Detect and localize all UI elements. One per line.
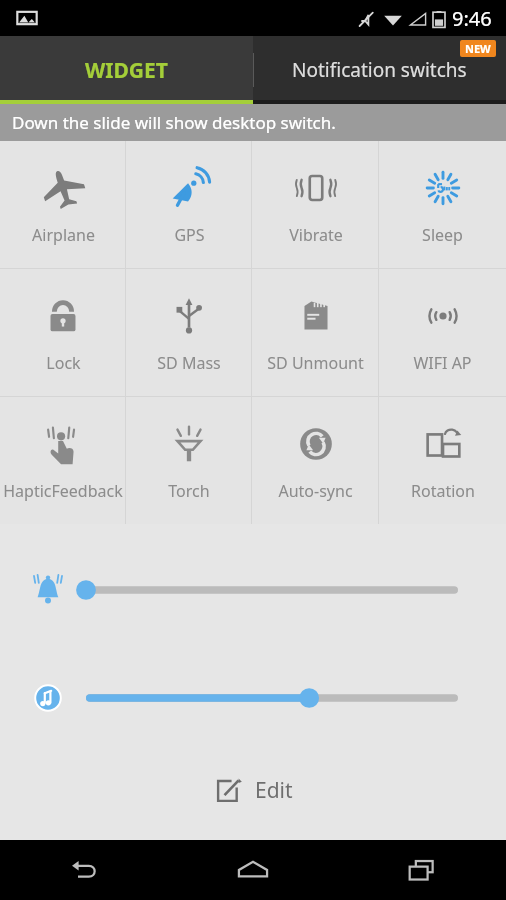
staticText: Edit [255, 776, 293, 805]
staticText: Torch [168, 480, 210, 502]
button[interactable]: Recent apps [337, 840, 506, 900]
button[interactable]: Airplane [0, 141, 126, 268]
button[interactable]: Torch [126, 397, 252, 524]
staticText: Auto-sync [278, 480, 353, 502]
staticText: SD Mass [157, 352, 221, 374]
button[interactable]: Auto-sync [252, 397, 379, 524]
button[interactable]: HapticFeedback [0, 397, 126, 524]
staticText: Sleep [422, 224, 463, 246]
button[interactable]: Notification switchs [253, 36, 506, 104]
button[interactable]: SD Unmount [252, 269, 379, 396]
staticText: Lock [46, 352, 81, 374]
other: Ringer volume [28, 570, 68, 610]
staticText: WIFI AP [413, 352, 472, 374]
button[interactable]: WIDGET [0, 36, 253, 104]
staticText: Rotation [411, 480, 475, 502]
button[interactable]: Back [0, 840, 168, 900]
button[interactable]: SD Mass [126, 269, 252, 396]
staticText: 9:46 [452, 5, 492, 32]
button[interactable]: Home [168, 840, 337, 900]
other: Media volume [28, 678, 68, 718]
staticText: GPS [174, 224, 205, 246]
staticText: Airplane [32, 224, 95, 246]
button[interactable]: Rotation [379, 397, 506, 524]
button[interactable]: Sleep [379, 141, 506, 268]
button[interactable]: Vibrate [252, 141, 379, 268]
button[interactable]: Edit [197, 768, 309, 812]
button[interactable]: GPS [126, 141, 252, 268]
button[interactable]: Ringer volume [0, 570, 506, 610]
staticText: Down the slide will show desktop switch. [12, 111, 336, 134]
staticText: Vibrate [289, 224, 343, 246]
staticText: HapticFeedback [3, 480, 123, 502]
staticText: SD Unmount [267, 352, 364, 374]
button[interactable]: Lock [0, 269, 126, 396]
staticText: WIDGET [85, 56, 168, 85]
staticText: Notification switchs [292, 57, 467, 83]
staticText: NEW [465, 41, 491, 56]
button[interactable]: Media volume [0, 678, 506, 718]
button[interactable]: WIFI AP [379, 269, 506, 396]
